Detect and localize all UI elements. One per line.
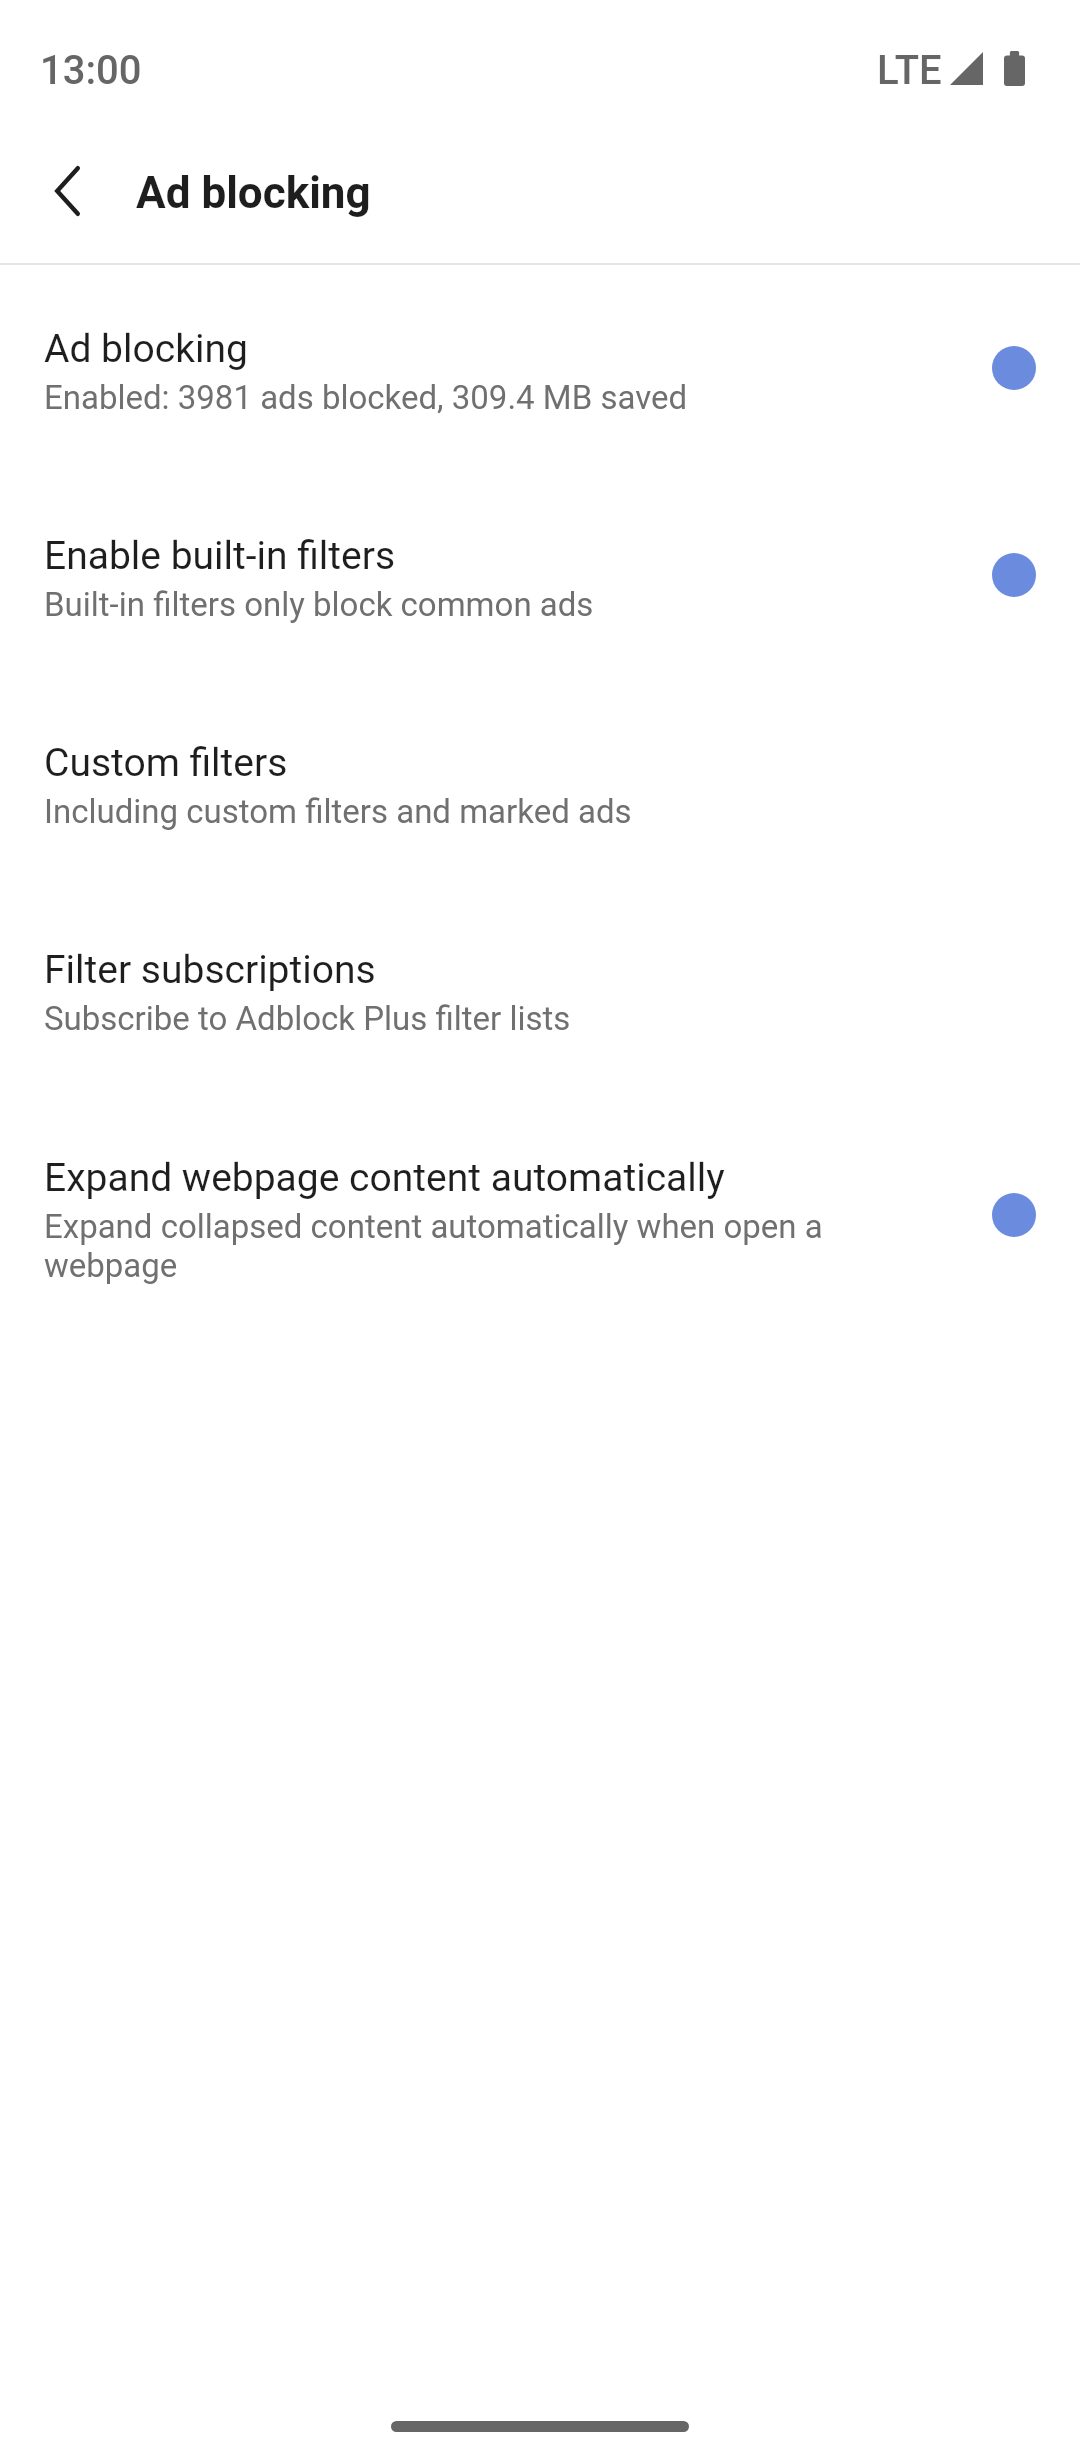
button[interactable]: Filter subscriptions — [0, 886, 1080, 1093]
staticText: Enabled: 3981 ads blocked, 309.4 MB save… — [44, 378, 688, 417]
staticText: Expand webpage content automatically — [44, 1155, 725, 1201]
button[interactable]: Toggle Enable built-in filters — [970, 531, 1058, 619]
staticText: Built-in filters only block common ads — [44, 585, 594, 624]
other: Mobile signal — [950, 52, 983, 85]
staticText: Including custom filters and marked ads — [44, 792, 632, 831]
button[interactable]: Custom filters — [0, 679, 1080, 886]
staticText: LTE — [877, 47, 942, 94]
button[interactable]: Toggle Ad blocking — [970, 324, 1058, 412]
staticText: Subscribe to Adblock Plus filter lists — [44, 999, 571, 1038]
other: Battery full — [1004, 51, 1025, 86]
staticText: Ad blocking — [136, 167, 371, 219]
button[interactable]: Enable built-in filters — [0, 472, 1080, 679]
button[interactable]: Expand webpage content automatically — [0, 1093, 1080, 1339]
button[interactable]: Ad blocking — [0, 265, 1080, 472]
button[interactable]: Toggle Expand webpage content automatica… — [970, 1171, 1058, 1259]
staticText: 13:00 — [40, 47, 142, 94]
staticText: Enable built-in filters — [44, 533, 396, 579]
button[interactable]: Navigate up — [25, 149, 109, 233]
staticText: Expand collapsed content automatically w… — [44, 1207, 964, 1285]
staticText: Ad blocking — [44, 326, 248, 372]
staticText: Filter subscriptions — [44, 947, 376, 993]
staticText: Custom filters — [44, 740, 288, 786]
